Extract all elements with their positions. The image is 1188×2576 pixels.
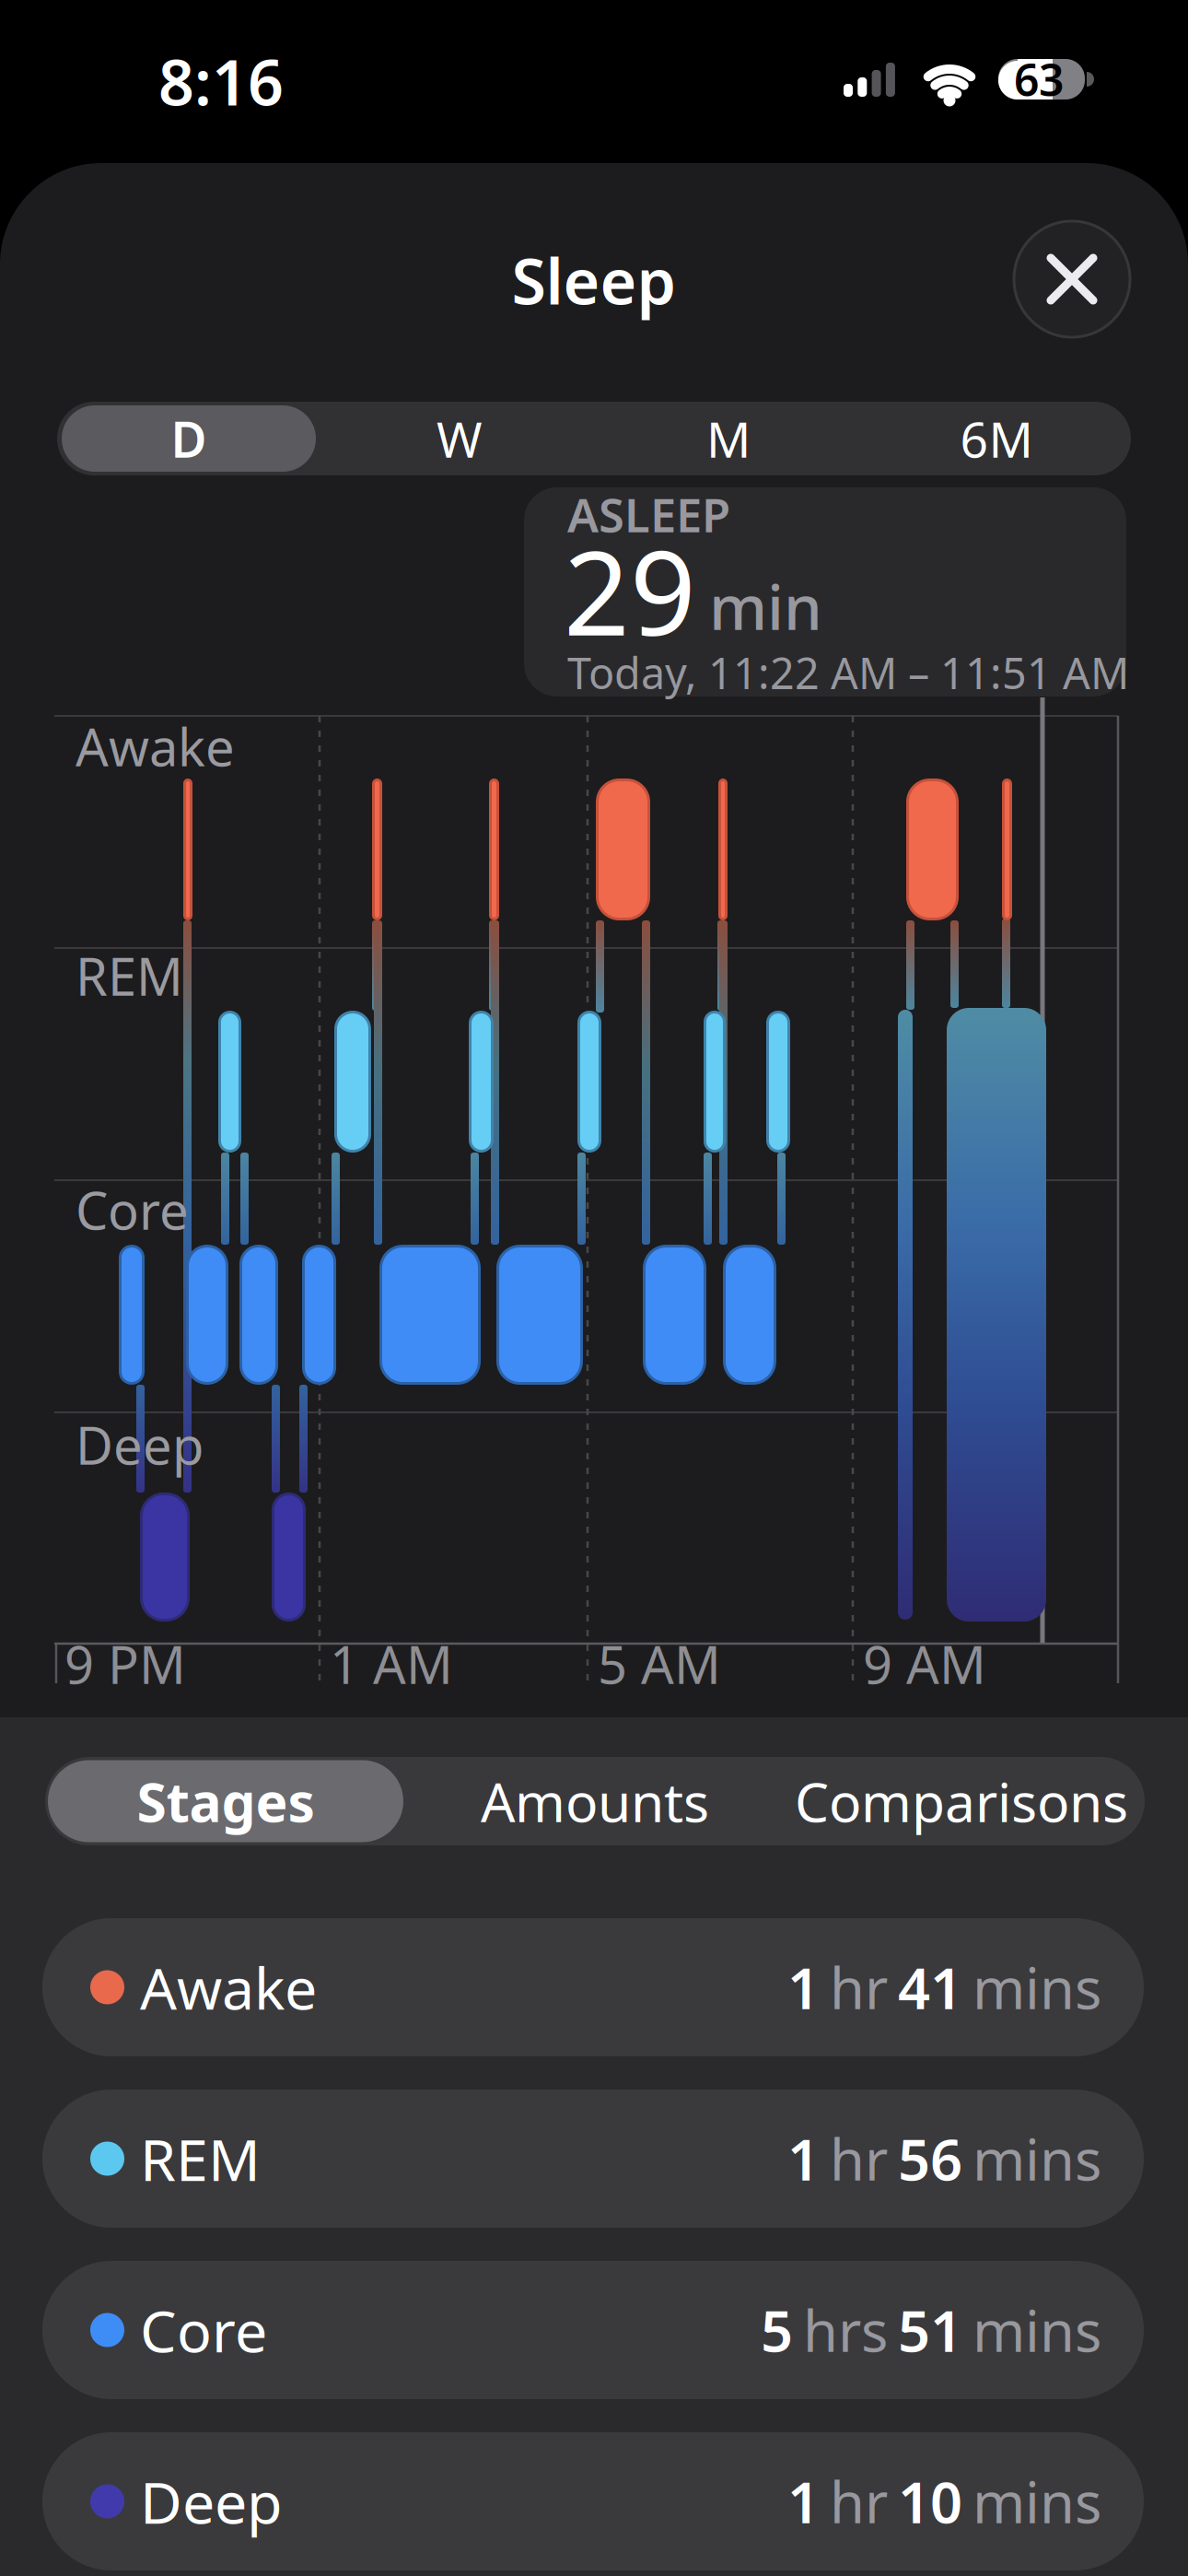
- staticText: 1: [787, 2464, 820, 2539]
- staticText: 9 PM: [64, 1630, 186, 1698]
- staticText: mins: [973, 2464, 1101, 2539]
- staticText: ASLEEP: [567, 483, 730, 545]
- staticText: 8:16: [158, 39, 284, 123]
- staticText: mins: [973, 2293, 1101, 2368]
- staticText: 51: [898, 2293, 962, 2368]
- staticText: W: [437, 406, 483, 471]
- button[interactable]: M: [601, 405, 856, 472]
- staticText: 63: [1014, 50, 1064, 109]
- staticText: min: [709, 565, 822, 647]
- staticText: 1 AM: [330, 1630, 453, 1698]
- staticText: Awake: [76, 712, 235, 781]
- button[interactable]: Stages: [48, 1760, 403, 1842]
- staticText: M: [706, 406, 751, 471]
- staticText: Comparisons: [795, 1765, 1128, 1837]
- staticText: REM: [140, 2120, 261, 2197]
- button[interactable]: REM: [42, 2090, 1144, 2228]
- staticText: Today, 11:22 AM – 11:51 AM: [567, 644, 1129, 701]
- staticText: 5: [761, 2293, 793, 2368]
- button[interactable]: Deep: [42, 2432, 1144, 2570]
- staticText: Deep: [76, 1410, 204, 1479]
- staticText: Core: [140, 2292, 267, 2368]
- staticText: mins: [973, 2121, 1101, 2196]
- staticText: 41: [898, 1950, 962, 2025]
- staticText: 10: [898, 2464, 962, 2539]
- staticText: Awake: [140, 1949, 317, 2026]
- staticText: 5 AM: [598, 1630, 721, 1698]
- staticText: hr: [830, 1950, 888, 2025]
- staticText: Amounts: [481, 1765, 709, 1837]
- button[interactable]: Comparisons: [759, 1760, 1164, 1842]
- staticText: 29: [564, 514, 696, 667]
- button[interactable]: Awake: [42, 1918, 1144, 2056]
- staticText: 56: [898, 2121, 962, 2196]
- staticText: 6M: [960, 406, 1033, 471]
- staticText: Stages: [137, 1765, 314, 1837]
- staticText: D: [171, 406, 207, 471]
- button[interactable]: 6M: [869, 405, 1124, 472]
- staticText: 1: [787, 2121, 820, 2196]
- button[interactable]: D: [62, 405, 316, 472]
- button[interactable]: [1014, 221, 1130, 337]
- staticText: hr: [830, 2121, 888, 2196]
- button[interactable]: Amounts: [417, 1760, 773, 1842]
- staticText: hr: [830, 2464, 888, 2539]
- staticText: mins: [973, 1950, 1101, 2025]
- staticText: Deep: [140, 2463, 283, 2540]
- button[interactable]: Core: [42, 2261, 1144, 2399]
- staticText: 9 AM: [863, 1630, 986, 1698]
- staticText: REM: [76, 941, 183, 1010]
- staticText: hrs: [803, 2293, 888, 2368]
- button[interactable]: W: [332, 405, 587, 472]
- staticText: 1: [787, 1950, 820, 2025]
- staticText: Core: [76, 1175, 189, 1244]
- staticText: Sleep: [512, 238, 676, 322]
